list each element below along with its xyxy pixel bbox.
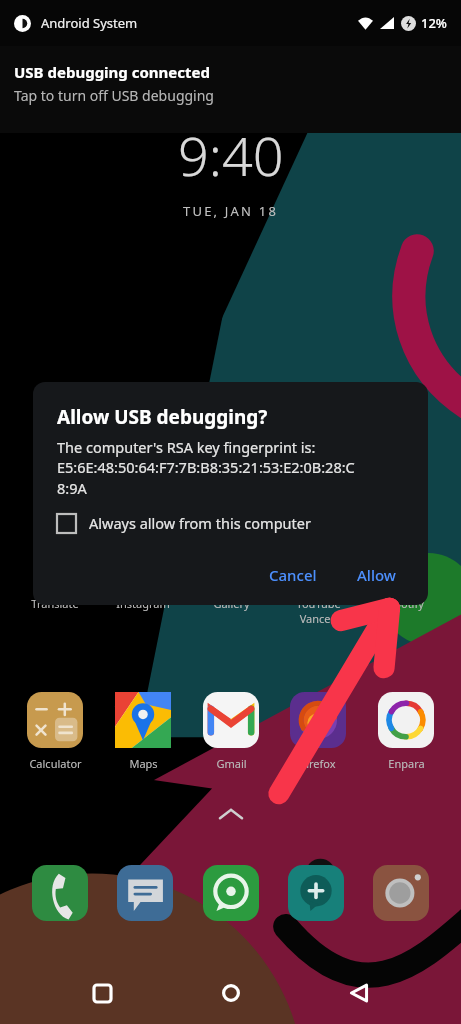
staticText: USB debugging connected <box>14 62 210 82</box>
button[interactable]: Camera <box>370 862 432 924</box>
button[interactable]: Duo <box>285 862 347 924</box>
button[interactable]: Instagram <box>104 596 182 611</box>
button[interactable]: Calculator <box>16 692 94 771</box>
button[interactable]: WhatsApp <box>200 862 262 924</box>
staticText: Android System <box>41 14 138 32</box>
button[interactable]: YouTube Vanced <box>279 596 357 626</box>
staticText: Gallery <box>213 596 250 611</box>
button[interactable]: Always allow from this computer <box>57 513 311 533</box>
staticText: TUE, JAN 18 <box>183 202 279 220</box>
button[interactable]: Enpara <box>367 692 445 771</box>
button[interactable]: USB debugging connected <box>0 46 461 133</box>
staticText: Cancel <box>269 565 317 585</box>
staticText: Always allow from this computer <box>89 513 311 533</box>
button[interactable]: Firefox <box>279 692 357 771</box>
staticText: Allow USB debugging? <box>57 404 268 430</box>
staticText: Gmail <box>216 756 247 771</box>
staticText: Maps <box>129 756 158 771</box>
button[interactable]: Spotify <box>367 596 445 611</box>
staticText: Tap to turn off USB debugging <box>14 86 214 105</box>
button[interactable]: Gmail <box>192 692 270 771</box>
staticText: Translate <box>31 596 79 611</box>
button[interactable]: Home <box>205 967 257 1019</box>
staticText: YouTube Vanced <box>296 596 341 626</box>
staticText: The computer's RSA key fingerprint is: E… <box>57 437 355 499</box>
staticText: Enpara <box>388 756 425 771</box>
staticText: Firefox <box>300 756 336 771</box>
button[interactable]: Recent apps <box>76 967 128 1019</box>
button[interactable]: Allow <box>345 555 408 595</box>
staticText: 9:40 <box>178 118 284 192</box>
button[interactable]: Gallery <box>192 596 270 611</box>
staticText: Spotify <box>388 596 424 611</box>
button[interactable]: Back <box>333 967 385 1019</box>
button[interactable]: Cancel <box>257 555 329 595</box>
staticText: 12% <box>421 14 447 32</box>
staticText: Calculator <box>29 756 82 771</box>
staticText: Instagram <box>116 596 170 611</box>
button[interactable]: Translate <box>16 596 94 611</box>
button[interactable]: Maps <box>104 692 182 771</box>
button[interactable]: Messages <box>114 862 176 924</box>
staticText: Allow <box>357 565 396 585</box>
button[interactable]: Phone <box>29 862 91 924</box>
